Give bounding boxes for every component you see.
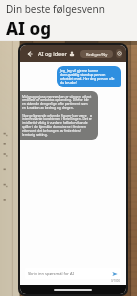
button[interactable]: Rediger/Ny	[80, 50, 113, 58]
button[interactable]: Jeg, Jeg vil gjerne kunne dansgvaldig st…	[57, 66, 121, 87]
staticText: Skriv inn spørsmål for AI	[28, 271, 74, 276]
button[interactable]: Skriv inn spørsmål for AI	[25, 268, 121, 279]
staticText: AI og ideer	[38, 50, 67, 57]
staticText: AI og idéutvikling	[6, 17, 137, 41]
button[interactable]: Settings	[116, 49, 122, 58]
button[interactable]: Målgruppejana mennesken er sängen utkrat…	[20, 91, 98, 140]
button[interactable]: Back	[24, 48, 35, 59]
staticText: 0/1000	[111, 279, 121, 283]
staticText: Din beste følgesvenn	[6, 2, 105, 16]
staticText: Skorgelignende orkende figurer kan være …	[22, 113, 92, 137]
button[interactable]: Assistant	[67, 49, 77, 59]
staticText: Rediger/Ny	[86, 52, 108, 57]
staticText: Målgruppejana mennesken er sängen utkrat…	[22, 94, 92, 110]
staticText: Jeg, Jeg vil gjerne kunne dansgvaldig st…	[60, 68, 118, 85]
button[interactable]: Send	[110, 269, 119, 278]
